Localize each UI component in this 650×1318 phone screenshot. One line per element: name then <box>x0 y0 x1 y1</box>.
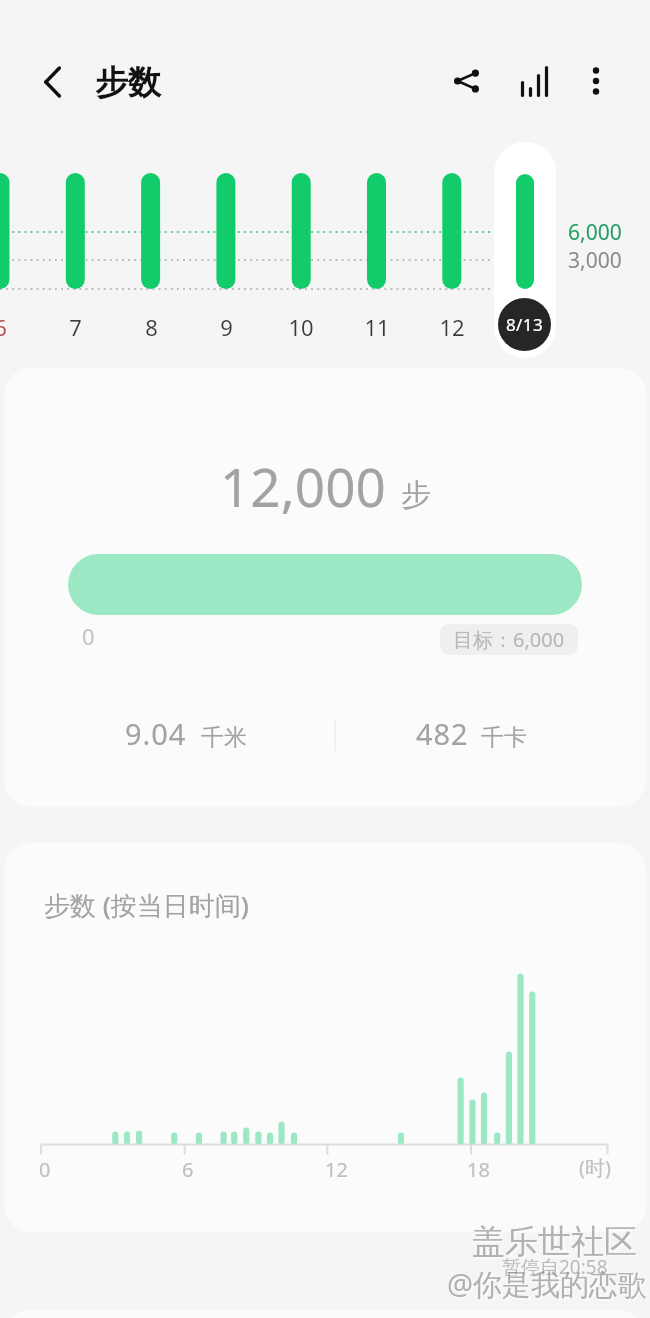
button[interactable] <box>494 142 556 358</box>
staticText: 12,000 <box>220 450 386 522</box>
staticText: 步 <box>401 476 431 514</box>
staticText: 12 <box>439 312 465 342</box>
staticText: 9.04 <box>125 714 187 753</box>
staticText: 暂停自20:58 <box>504 1256 610 1282</box>
staticText: 8 <box>145 312 158 342</box>
staticText: 千卡 <box>481 723 527 752</box>
button[interactable]: Share <box>438 53 494 109</box>
staticText: 12 <box>325 1156 348 1183</box>
button[interactable]: 8/13 <box>498 298 551 351</box>
staticText: 8/13 <box>506 313 544 336</box>
staticText: @你是我的恋歌 <box>447 1264 648 1304</box>
staticText: 10 <box>288 312 314 342</box>
staticText: 11 <box>364 312 390 342</box>
staticText: 0 <box>82 621 95 651</box>
staticText: 暂停自20:58 <box>502 1254 608 1280</box>
staticText: 步数 (按当日时间) <box>44 887 249 923</box>
staticText: 9 <box>220 312 233 342</box>
staticText: 千米 <box>201 723 247 752</box>
staticText: 6 <box>0 312 7 342</box>
staticText: 盖乐世社区 <box>474 1223 639 1265</box>
staticText: 7 <box>69 312 82 342</box>
staticText: 482 <box>416 714 469 753</box>
staticText: 6 <box>182 1156 194 1183</box>
staticText: (时) <box>579 1154 611 1181</box>
button[interactable]: 12,000 <box>4 368 646 807</box>
button[interactable]: More options <box>568 53 624 109</box>
staticText: 3,000 <box>568 246 622 275</box>
staticText: 18 <box>467 1156 490 1183</box>
button[interactable]: Back <box>25 54 81 110</box>
button[interactable]: 步数 (按当日时间) <box>4 843 646 1232</box>
staticText: 盖乐世社区 <box>472 1221 637 1263</box>
staticText: 目标：6,000 <box>453 626 565 653</box>
staticText: @你是我的恋歌 <box>449 1266 650 1306</box>
staticText: 0 <box>39 1156 51 1183</box>
button[interactable]: Statistics <box>506 53 562 109</box>
staticText: 6,000 <box>568 218 622 247</box>
staticText: 步数 <box>95 62 161 104</box>
